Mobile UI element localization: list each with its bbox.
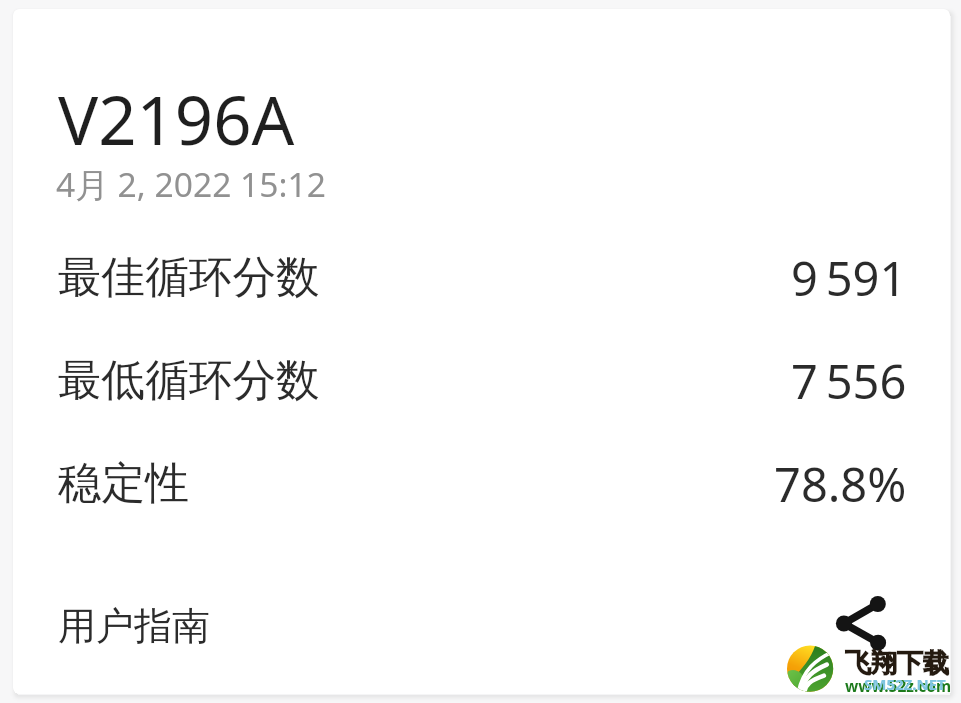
button[interactable]: 最佳循环分数: [0, 226, 961, 329]
button[interactable]: 稳定性: [0, 432, 961, 535]
staticText: V2196A: [58, 73, 295, 164]
button[interactable]: Share: [829, 591, 893, 655]
staticText: 飞翔下载: [845, 647, 949, 680]
staticText: 最低循环分数: [58, 353, 320, 408]
staticText: 9 591: [791, 246, 907, 310]
staticText: www.52z.com: [845, 675, 952, 696]
staticText: 最佳循环分数: [58, 250, 320, 305]
staticText: 稳定性: [58, 456, 189, 511]
staticText: 7 556: [791, 349, 907, 413]
staticText: SM52Z.NET: [864, 674, 946, 694]
staticText: 用户指南: [58, 602, 210, 650]
staticText: 78.8%: [774, 452, 907, 516]
button[interactable]: 最低循环分数: [0, 329, 961, 432]
staticText: 4月 2, 2022 15:12: [56, 161, 326, 207]
button[interactable]: 用户指南: [0, 574, 961, 677]
